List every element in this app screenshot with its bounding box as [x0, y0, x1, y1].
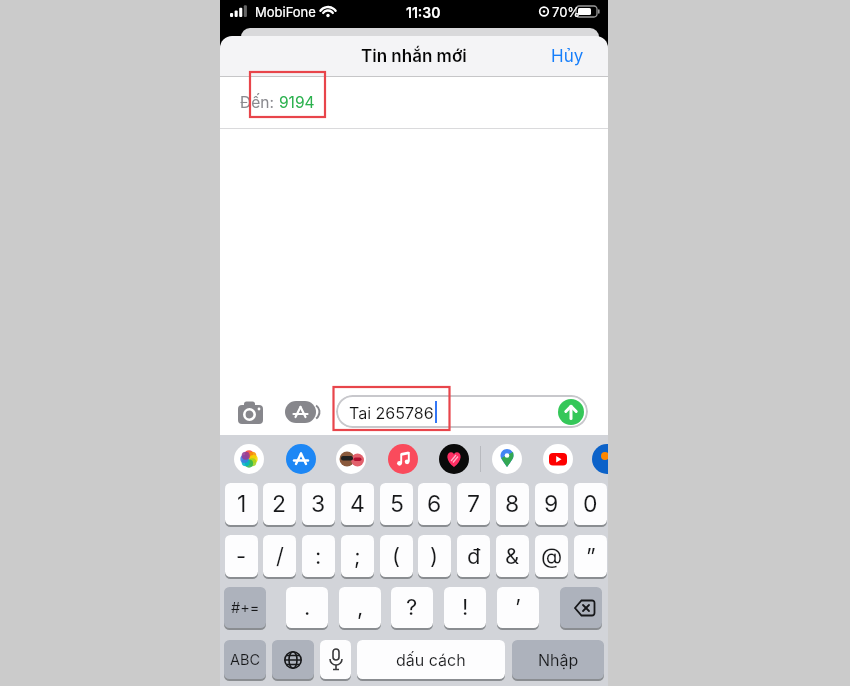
- staticText: ,: [357, 594, 364, 621]
- button[interactable]: ): [418, 535, 451, 577]
- staticText: Đến:: [240, 93, 279, 112]
- button[interactable]: Nhập: [512, 640, 604, 679]
- button[interactable]: :: [302, 535, 335, 577]
- button[interactable]: -: [225, 535, 258, 577]
- button[interactable]: [286, 444, 316, 474]
- button[interactable]: ;: [341, 535, 374, 577]
- staticText: 11:30: [406, 4, 441, 21]
- button[interactable]: dấu cách: [357, 640, 505, 679]
- button[interactable]: !: [444, 587, 486, 628]
- staticText: 3: [311, 490, 326, 518]
- button[interactable]: 4: [341, 483, 374, 525]
- button[interactable]: Đến:: [220, 77, 608, 128]
- button[interactable]: [558, 399, 584, 425]
- staticText: Hủy: [551, 46, 584, 67]
- button[interactable]: 5: [380, 483, 413, 525]
- staticText: 9: [544, 490, 559, 518]
- staticText: ABC: [230, 651, 261, 669]
- button[interactable]: [439, 444, 469, 474]
- staticText: ”: [586, 543, 596, 570]
- button[interactable]: [560, 587, 602, 628]
- staticText: 70%: [552, 4, 581, 20]
- staticText: !: [462, 594, 469, 621]
- button[interactable]: Hủy: [542, 36, 592, 76]
- staticText: 5: [390, 490, 404, 518]
- staticText: dấu cách: [396, 650, 466, 669]
- staticText: 4: [350, 490, 365, 518]
- button[interactable]: ?: [391, 587, 433, 628]
- staticText: ’: [515, 594, 521, 621]
- button[interactable]: [543, 444, 573, 474]
- staticText: ?: [406, 594, 418, 621]
- staticText: (: [392, 543, 401, 570]
- staticText: 0: [583, 490, 598, 518]
- staticText: 7: [467, 490, 481, 518]
- staticText: /: [276, 543, 284, 570]
- staticText: ): [430, 543, 439, 570]
- staticText: Tin nhắn mới: [361, 46, 467, 67]
- button[interactable]: @: [535, 535, 568, 577]
- button[interactable]: 1: [225, 483, 258, 525]
- staticText: Nhập: [538, 650, 579, 669]
- staticText: ;: [354, 543, 361, 570]
- staticText: 2: [272, 490, 287, 518]
- button[interactable]: .: [286, 587, 328, 628]
- button[interactable]: đ: [457, 535, 490, 577]
- staticText: .: [304, 594, 311, 621]
- button[interactable]: 8: [496, 483, 529, 525]
- button[interactable]: [492, 444, 522, 474]
- button[interactable]: Tai 265786: [336, 395, 588, 428]
- button[interactable]: 9: [535, 483, 568, 525]
- button[interactable]: [388, 444, 418, 474]
- staticText: :: [315, 543, 322, 570]
- staticText: Tai 265786: [349, 403, 434, 422]
- staticText: đ: [467, 543, 481, 570]
- button[interactable]: [592, 444, 608, 474]
- button[interactable]: [336, 444, 366, 474]
- button[interactable]: &: [496, 535, 529, 577]
- button[interactable]: 0: [574, 483, 607, 525]
- staticText: 8: [505, 490, 520, 518]
- staticText: @: [541, 543, 563, 570]
- button[interactable]: #+=: [224, 587, 266, 628]
- button[interactable]: [320, 640, 351, 679]
- button[interactable]: 2: [263, 483, 296, 525]
- staticText: 6: [427, 490, 442, 518]
- staticText: 9194: [279, 93, 315, 112]
- button[interactable]: [234, 444, 264, 474]
- staticText: -: [236, 543, 247, 570]
- staticText: 1: [237, 490, 247, 518]
- button[interactable]: ABC: [224, 640, 266, 679]
- button[interactable]: ’: [497, 587, 539, 628]
- staticText: #+=: [231, 599, 260, 617]
- staticText: &: [505, 543, 520, 570]
- button[interactable]: (: [380, 535, 413, 577]
- button[interactable]: 7: [457, 483, 490, 525]
- staticText: MobiFone: [255, 4, 316, 20]
- button[interactable]: ”: [574, 535, 607, 577]
- button[interactable]: ,: [339, 587, 381, 628]
- button[interactable]: [272, 640, 314, 679]
- button[interactable]: 3: [302, 483, 335, 525]
- button[interactable]: 6: [418, 483, 451, 525]
- button[interactable]: /: [263, 535, 296, 577]
